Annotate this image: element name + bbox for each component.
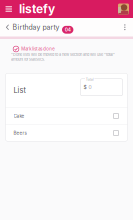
staticText: amount for statistics. xyxy=(11,57,45,62)
staticText: Beers xyxy=(13,130,26,136)
button[interactable]: Account xyxy=(118,3,129,14)
staticText: 0 xyxy=(88,84,91,90)
staticText: Mark list as done xyxy=(21,46,54,52)
button[interactable]: Mark list as done xyxy=(0,39,54,52)
button[interactable]: Beers xyxy=(5,125,127,141)
staticText: $ xyxy=(83,84,86,90)
staticText: 04 xyxy=(65,27,71,33)
staticText: Cake xyxy=(13,113,24,119)
staticText: Birthday party xyxy=(12,23,59,31)
button[interactable]: Back xyxy=(2,20,12,34)
staticText: List xyxy=(13,86,25,95)
staticText: Total xyxy=(86,77,94,82)
staticText: listefy xyxy=(19,2,55,16)
button[interactable]: Cake xyxy=(5,108,127,124)
staticText: “Done lists will be moved to a new secti… xyxy=(11,52,115,57)
button[interactable]: More options xyxy=(120,20,130,34)
button[interactable]: Menu xyxy=(3,2,14,15)
